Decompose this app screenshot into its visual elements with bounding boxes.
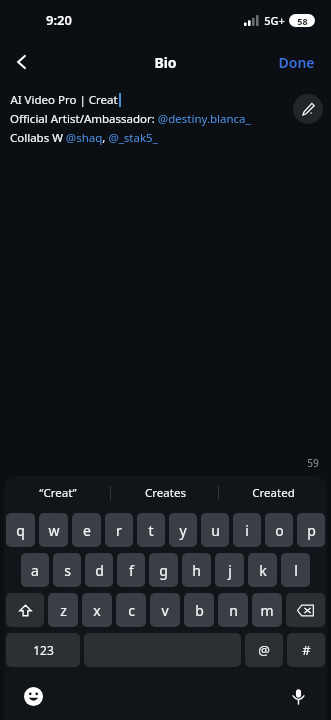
button[interactable]: n: [218, 593, 248, 627]
staticText: h: [192, 561, 201, 580]
staticText: AI Video Pro | Creat: [10, 92, 118, 108]
button[interactable]: f: [117, 553, 145, 587]
button[interactable]: e: [72, 513, 101, 547]
staticText: n: [229, 601, 238, 620]
button[interactable]: q: [6, 513, 35, 547]
staticText: Bio: [154, 53, 177, 72]
button[interactable]: Back: [0, 40, 44, 84]
staticText: z: [60, 601, 67, 620]
button[interactable]: r: [105, 513, 133, 547]
button[interactable]: Edit with AI: [293, 94, 323, 124]
button[interactable]: l: [281, 553, 310, 587]
staticText: c: [128, 601, 135, 620]
staticText: m: [260, 601, 274, 620]
button[interactable]: z: [48, 593, 78, 627]
button[interactable]: 123: [6, 633, 80, 667]
button[interactable]: #: [287, 633, 325, 667]
button[interactable]: u: [201, 513, 229, 547]
staticText: u: [211, 521, 220, 540]
button[interactable]: a: [21, 553, 49, 587]
button[interactable]: “Creat”: [4, 476, 111, 510]
button[interactable]: y: [169, 513, 197, 547]
staticText: Created: [252, 485, 295, 501]
button[interactable]: k: [248, 553, 277, 587]
staticText: w: [48, 521, 60, 540]
staticText: Collabs W @shaq, @_stak5_: [10, 130, 158, 146]
button[interactable]: j: [215, 553, 244, 587]
button[interactable]: Done: [262, 43, 331, 82]
staticText: x: [93, 601, 101, 620]
button[interactable]: Emoji: [18, 681, 48, 711]
staticText: d: [95, 561, 104, 580]
staticText: s: [64, 561, 71, 580]
staticText: y: [179, 521, 187, 540]
button[interactable]: Created: [219, 476, 327, 510]
staticText: Done: [278, 53, 315, 72]
staticText: 5G+: [264, 13, 285, 28]
staticText: f: [129, 561, 134, 580]
button[interactable]: Shift: [6, 593, 44, 627]
button[interactable]: g: [149, 553, 178, 587]
staticText: b: [195, 601, 204, 620]
button[interactable]: x: [82, 593, 112, 627]
button[interactable]: m: [252, 593, 282, 627]
staticText: e: [83, 521, 91, 540]
staticText: “Creat”: [39, 485, 77, 501]
staticText: #: [302, 641, 311, 659]
button[interactable]: s: [53, 553, 81, 587]
button[interactable]: w: [39, 513, 68, 547]
button[interactable]: Creates: [111, 476, 219, 510]
staticText: q: [16, 521, 25, 540]
button[interactable]: v: [150, 593, 180, 627]
staticText: 59: [307, 456, 319, 470]
staticText: i: [245, 521, 249, 540]
staticText: p: [307, 521, 316, 540]
staticText: 58: [297, 15, 308, 27]
button[interactable]: Backspace: [286, 593, 325, 627]
staticText: o: [275, 521, 284, 540]
button[interactable]: h: [182, 553, 211, 587]
button[interactable]: b: [184, 593, 214, 627]
staticText: 9:20: [46, 11, 72, 29]
staticText: Creates: [145, 485, 186, 501]
staticText: a: [31, 561, 39, 580]
staticText: 123: [33, 642, 54, 658]
staticText: g: [159, 561, 168, 580]
button[interactable]: Voice input: [283, 681, 313, 711]
staticText: Official Artist/Ambassador: @destiny.bla…: [10, 111, 251, 127]
staticText: j: [228, 561, 232, 580]
staticText: @: [258, 641, 270, 659]
staticText: r: [116, 521, 122, 540]
staticText: v: [161, 601, 169, 620]
button[interactable]: o: [265, 513, 293, 547]
button[interactable]: p: [297, 513, 325, 547]
staticText: k: [259, 561, 267, 580]
button[interactable]: i: [233, 513, 261, 547]
button[interactable]: @: [245, 633, 283, 667]
button[interactable]: d: [85, 553, 113, 587]
staticText: l: [294, 561, 298, 580]
staticText: t: [148, 521, 154, 540]
button[interactable]: t: [137, 513, 165, 547]
button[interactable]: c: [116, 593, 146, 627]
